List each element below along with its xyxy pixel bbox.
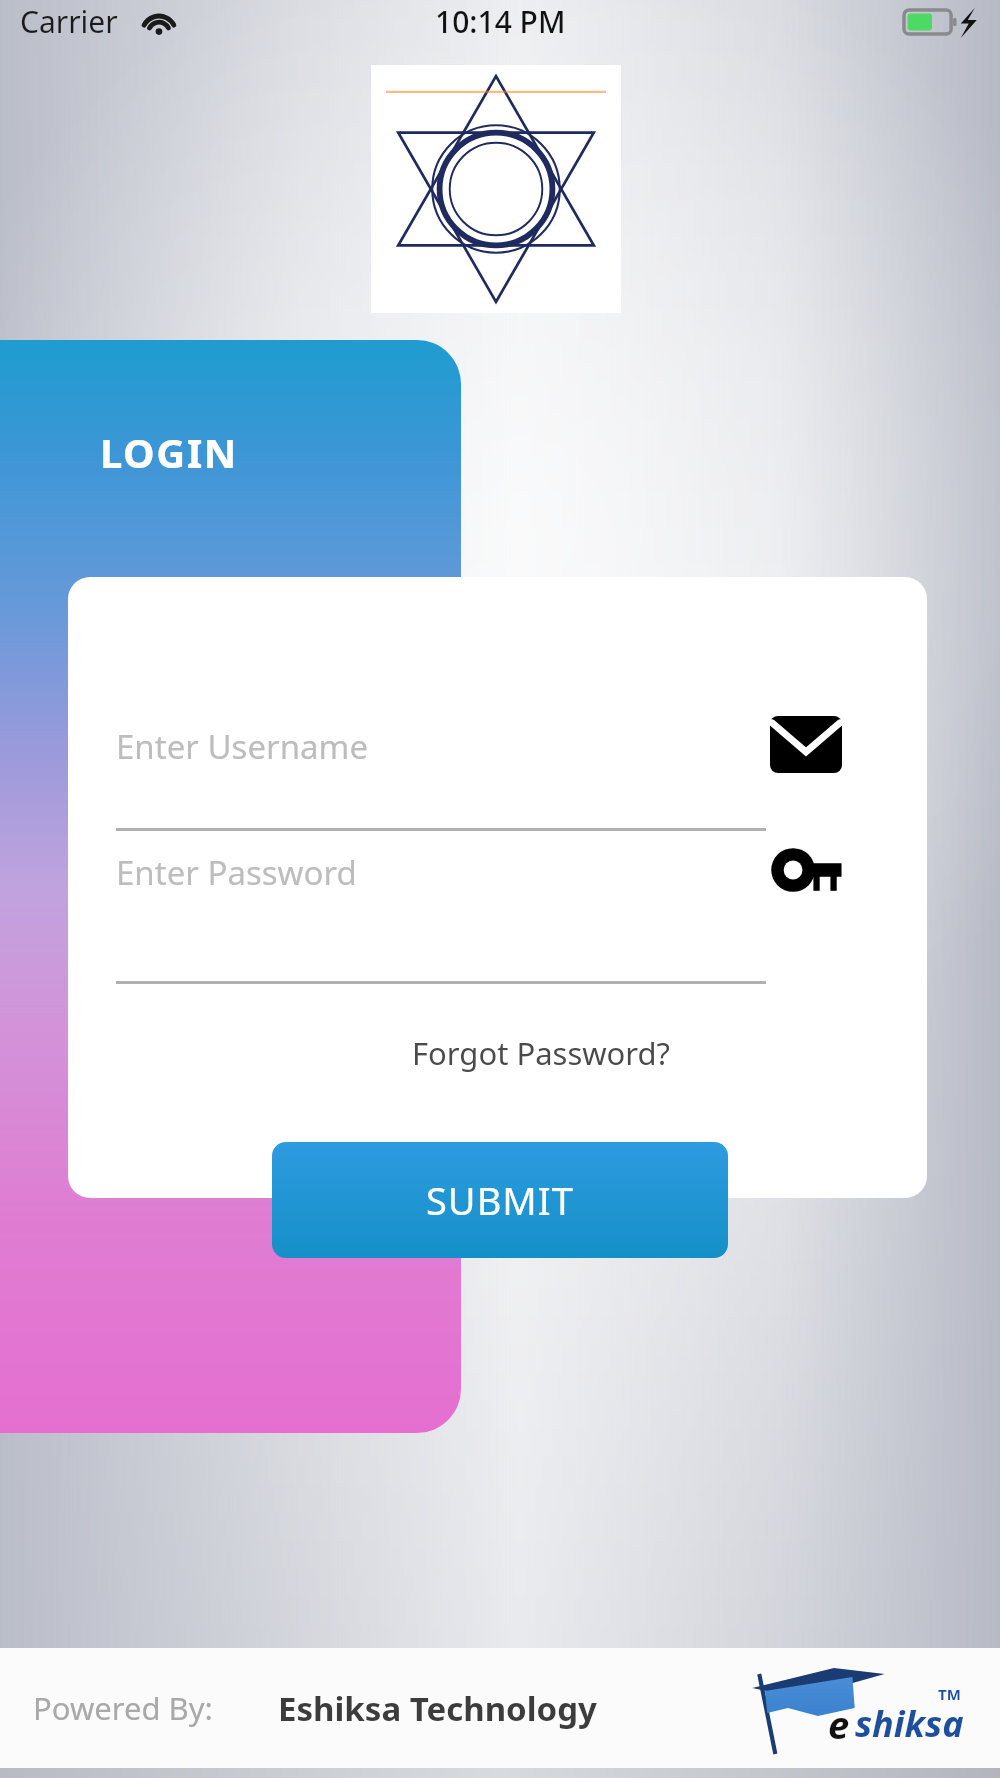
staticText: Enter Password [116, 850, 357, 895]
other: eshiksa logo [742, 1658, 972, 1758]
staticText: shiksa [855, 1699, 964, 1748]
button[interactable]: Enter Username [116, 704, 766, 788]
staticText: TM [938, 1684, 961, 1704]
button[interactable]: Username [758, 698, 854, 790]
staticText: Forgot Password? [412, 1032, 671, 1074]
staticText: 10:14 PM [435, 1, 566, 42]
staticText: Eshiksa Technology [278, 1686, 597, 1731]
button[interactable]: Forgot Password? [398, 1024, 685, 1082]
staticText: SUBMIT [426, 1174, 574, 1226]
staticText: Powered By: [33, 1687, 213, 1729]
button[interactable]: SUBMIT [272, 1142, 728, 1258]
staticText: Enter Username [116, 724, 369, 769]
staticText: LOGIN [100, 425, 238, 479]
button[interactable]: Enter Password [116, 830, 766, 914]
button[interactable]: Password [758, 824, 854, 916]
staticText: Carrier [20, 1, 118, 42]
staticText: e [828, 1698, 850, 1750]
